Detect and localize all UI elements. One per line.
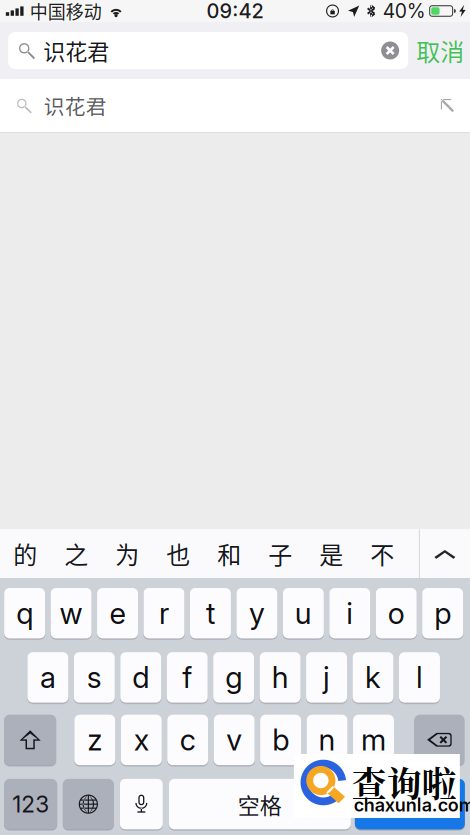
button[interactable]: z [74, 715, 115, 765]
button[interactable]: Delete [414, 715, 464, 765]
staticText: 也 [166, 536, 190, 571]
button[interactable]: 子 [255, 529, 306, 578]
staticText: h [272, 660, 289, 695]
button[interactable]: Dictation [120, 779, 163, 829]
staticText: m [361, 722, 386, 758]
button[interactable]: 取消 [416, 32, 464, 69]
staticText: 识花君 [43, 35, 109, 66]
button[interactable]: Shift [4, 715, 56, 765]
button[interactable]: d [120, 652, 161, 703]
staticText: a [40, 660, 56, 695]
button[interactable]: p [422, 588, 463, 638]
button[interactable]: b [260, 715, 301, 765]
button[interactable]: k [352, 652, 393, 703]
button[interactable]: w [51, 588, 92, 638]
button[interactable]: Clear text [381, 41, 399, 59]
staticText: j [323, 660, 330, 695]
button[interactable]: o [376, 588, 417, 638]
staticText: t [206, 595, 215, 631]
staticText: 不 [370, 536, 394, 571]
staticText: e [109, 595, 125, 631]
button[interactable]: i [329, 588, 370, 638]
button[interactable]: n [307, 715, 348, 765]
staticText: 中国移动 [30, 0, 102, 24]
staticText: i [346, 595, 353, 631]
staticText: chaxunla.com [354, 794, 470, 816]
button[interactable]: y [236, 588, 277, 638]
button[interactable]: 和 [204, 529, 255, 578]
staticText: 之 [64, 536, 88, 571]
button[interactable]: 123 [4, 779, 57, 829]
staticText: 查询啦 [352, 757, 457, 807]
staticText: n [319, 722, 336, 758]
button[interactable]: 是 [306, 529, 357, 578]
button[interactable]: t [190, 588, 231, 638]
button[interactable]: q [4, 588, 45, 638]
button[interactable]: 识花君 [0, 79, 470, 132]
staticText: 123 [12, 790, 49, 818]
staticText: 空格 [238, 788, 282, 820]
button[interactable]: e [97, 588, 138, 638]
staticText: r [159, 595, 169, 631]
button[interactable]: x [121, 715, 162, 765]
button[interactable]: u [283, 588, 324, 638]
staticText: 09:42 [206, 0, 263, 23]
button[interactable]: Expand candidates [420, 529, 470, 578]
button[interactable]: c [167, 715, 208, 765]
staticText: l [416, 660, 423, 695]
staticText: 和 [217, 536, 241, 571]
button[interactable]: h [260, 652, 301, 703]
staticText: 是 [319, 536, 343, 571]
button[interactable]: v [214, 715, 255, 765]
staticText: v [226, 722, 242, 758]
staticText: y [249, 595, 265, 631]
button[interactable]: 不 [357, 529, 408, 578]
staticText: 识花君 [44, 90, 107, 120]
button[interactable]: f [167, 652, 208, 703]
staticText: p [434, 595, 451, 631]
button[interactable]: 为 [102, 529, 153, 578]
staticText: u [295, 595, 312, 631]
staticText: c [180, 722, 196, 758]
button[interactable]: a [27, 652, 68, 703]
staticText: o [388, 595, 405, 631]
staticText: f [182, 660, 192, 695]
staticText: z [87, 722, 102, 758]
button[interactable]: j [306, 652, 347, 703]
staticText: w [60, 595, 83, 631]
button[interactable]: 的 [0, 529, 51, 578]
staticText: g [225, 660, 242, 695]
button[interactable]: l [399, 652, 440, 703]
staticText: 子 [268, 536, 292, 571]
staticText: 的 [13, 536, 37, 571]
staticText: s [87, 660, 102, 695]
staticText: x [134, 722, 149, 758]
button[interactable]: g [213, 652, 254, 703]
button[interactable]: s [74, 652, 115, 703]
button[interactable]: 之 [51, 529, 102, 578]
button[interactable]: Return [355, 779, 465, 829]
staticText: 40% [383, 0, 426, 23]
button[interactable]: m [353, 715, 394, 765]
button[interactable]: 也 [153, 529, 204, 578]
staticText: 取消 [416, 33, 464, 68]
button[interactable]: 空格 [169, 779, 351, 829]
staticText: d [132, 660, 149, 695]
staticText: b [272, 722, 289, 758]
button[interactable]: Next keyboard [63, 779, 114, 829]
staticText: k [365, 660, 381, 695]
staticText: 为 [115, 536, 139, 571]
staticText: q [16, 595, 33, 631]
button[interactable]: r [143, 588, 184, 638]
